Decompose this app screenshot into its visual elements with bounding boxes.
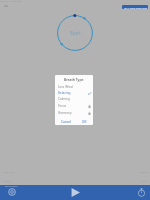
button[interactable]: OK <box>81 120 88 124</box>
staticText: Harmony <box>58 111 72 115</box>
staticText: Calming <box>58 97 70 101</box>
staticText: PRO ACCESS <box>5 185 18 188</box>
staticText: Relaxing <box>58 91 71 95</box>
staticText: OK <box>82 120 87 124</box>
staticText: Cancel <box>61 120 71 124</box>
button[interactable]: Harmony <box>55 110 93 116</box>
button[interactable]: Less Wind <box>55 84 93 90</box>
staticText: 9:41 AM <box>1 0 10 3</box>
staticText: Relaxing <box>139 171 148 174</box>
staticText: Normal <box>140 180 148 183</box>
button[interactable]: Play <box>64 185 86 200</box>
staticText: Start <box>70 30 81 36</box>
button[interactable]: Timer <box>133 185 150 200</box>
staticText: Breath Type <box>3 171 15 174</box>
staticText: Focus <box>58 104 67 108</box>
button[interactable]: Try 7 Days FREE Trial <box>122 5 148 9</box>
staticText: Difficulty <box>3 180 12 183</box>
button[interactable]: Start <box>57 15 93 51</box>
staticText: LTE 100% <box>12 0 23 3</box>
button[interactable]: Relaxing <box>55 90 93 96</box>
button[interactable]: Difficulty <box>3 177 148 186</box>
button[interactable]: Pro access <box>2 185 20 200</box>
button[interactable]: Focus <box>55 103 93 109</box>
staticText: Less Wind <box>58 85 73 89</box>
staticText: Breath Type <box>64 77 84 82</box>
button[interactable]: Calming <box>55 96 93 102</box>
button[interactable]: Cancel <box>60 120 72 124</box>
staticText: Try 7 Days FREE Trial <box>124 6 147 9</box>
